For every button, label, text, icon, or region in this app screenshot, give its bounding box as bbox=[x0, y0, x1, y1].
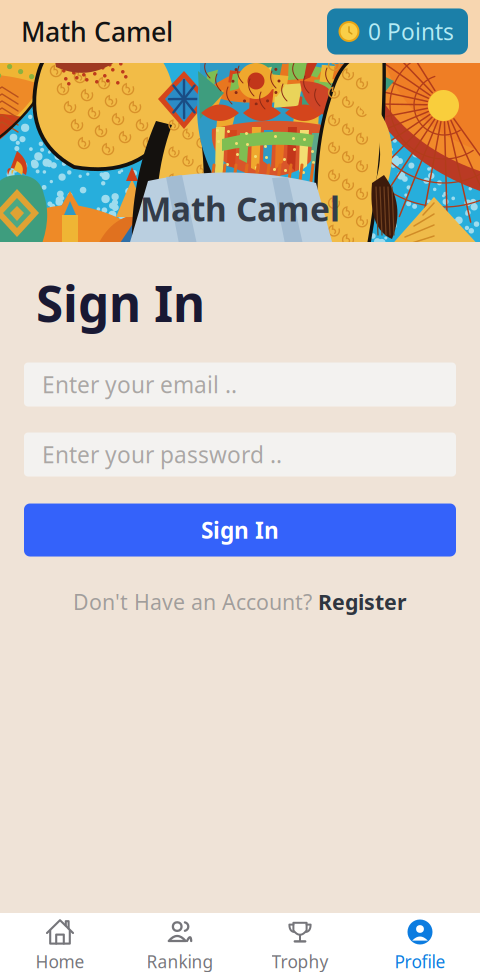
button[interactable]: Sign In bbox=[24, 503, 456, 556]
button[interactable]: Trophy bbox=[240, 912, 360, 972]
button[interactable]: Don't Have an Account? bbox=[24, 587, 456, 616]
button[interactable]: 0 Points bbox=[327, 8, 468, 54]
staticText: Math Camel bbox=[21, 14, 173, 49]
staticText: Don't Have an Account? bbox=[73, 587, 318, 616]
button[interactable]: Home bbox=[0, 912, 120, 972]
staticText: Sign In bbox=[36, 270, 205, 335]
staticText: Profile bbox=[394, 950, 445, 972]
staticText: Enter your email .. bbox=[42, 369, 237, 400]
staticText: Register bbox=[318, 587, 407, 616]
staticText: Enter your password .. bbox=[42, 439, 282, 470]
staticText: Trophy bbox=[271, 950, 328, 972]
button[interactable]: Profile bbox=[360, 912, 480, 972]
staticText: Home bbox=[35, 950, 84, 972]
button[interactable]: Ranking bbox=[120, 912, 240, 972]
staticText: Ranking bbox=[146, 950, 213, 972]
staticText: 0 Points bbox=[368, 16, 454, 46]
staticText: Sign In bbox=[201, 515, 279, 545]
staticText: Math Camel bbox=[140, 186, 340, 231]
